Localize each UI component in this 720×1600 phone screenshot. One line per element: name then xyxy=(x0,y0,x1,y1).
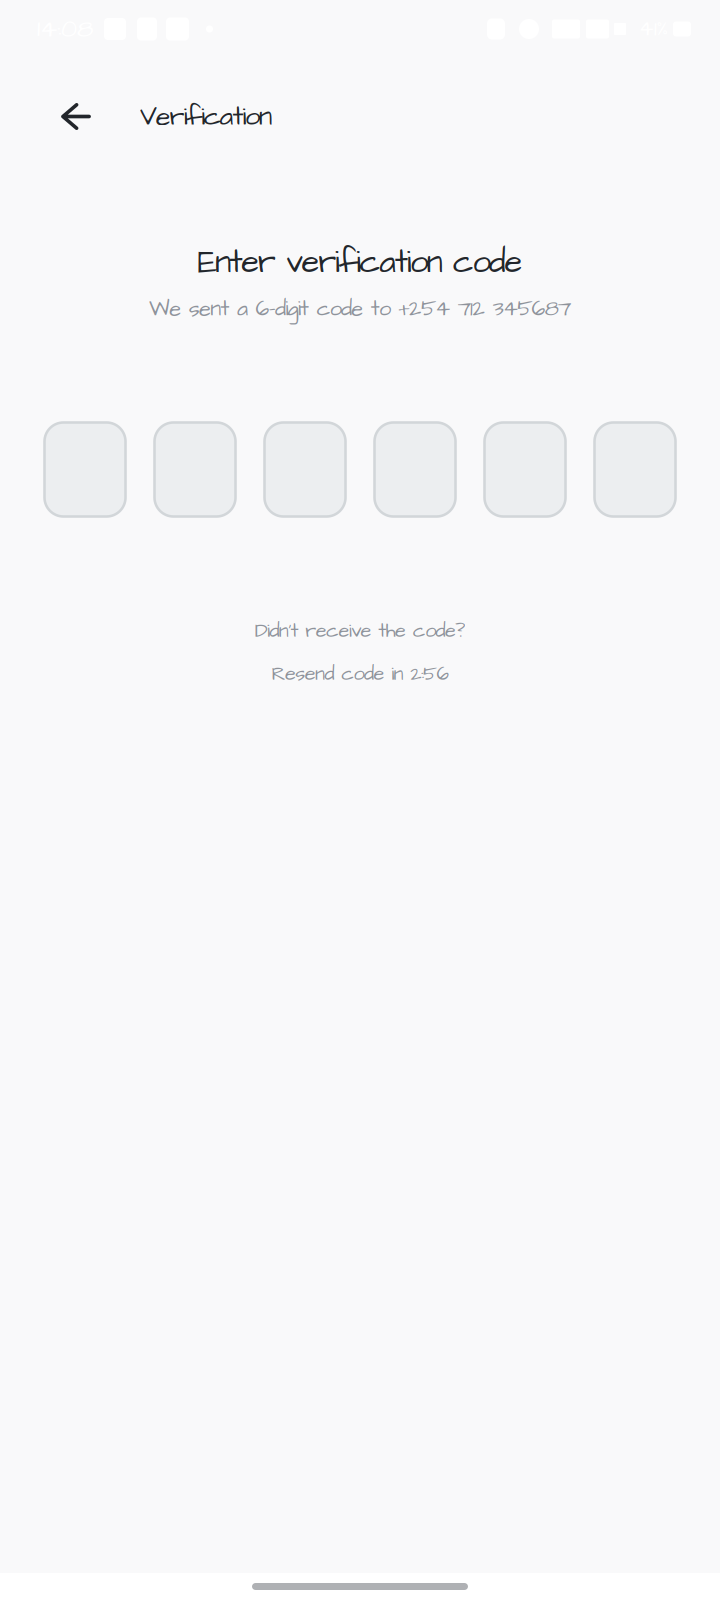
staticText: Didn't receive the code? xyxy=(255,617,465,645)
staticText: Enter verification code xyxy=(197,240,523,285)
button[interactable]: Digit 1 xyxy=(44,422,125,516)
button[interactable]: Digit 6 xyxy=(594,422,675,516)
button[interactable]: Digit 4 xyxy=(374,422,455,516)
button[interactable]: Digit 5 xyxy=(484,422,565,516)
button[interactable]: Digit 3 xyxy=(264,422,345,516)
staticText: Resend code in 2:56 xyxy=(272,660,448,688)
button[interactable]: Back xyxy=(61,94,140,138)
button[interactable]: Resend code in 2:56 xyxy=(272,666,448,681)
staticText: Verification xyxy=(140,98,273,135)
staticText: We sent a 6-digit code to +254 712 34568… xyxy=(149,294,571,324)
button[interactable]: Digit 2 xyxy=(154,422,235,516)
